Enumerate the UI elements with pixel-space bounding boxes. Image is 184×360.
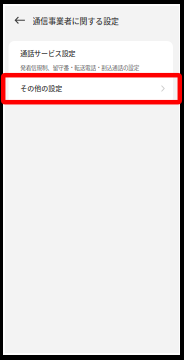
- staticText: 通話サービス設定: [20, 48, 76, 58]
- button[interactable]: その他の設定: [8, 73, 173, 104]
- staticText: その他の設定: [20, 83, 62, 93]
- staticText: 発着信規制、留守番・転送電話・割込通話の設定: [20, 63, 140, 71]
- staticText: 通信事業者に関する設定: [32, 15, 119, 27]
- button[interactable]: Back: [6, 9, 30, 31]
